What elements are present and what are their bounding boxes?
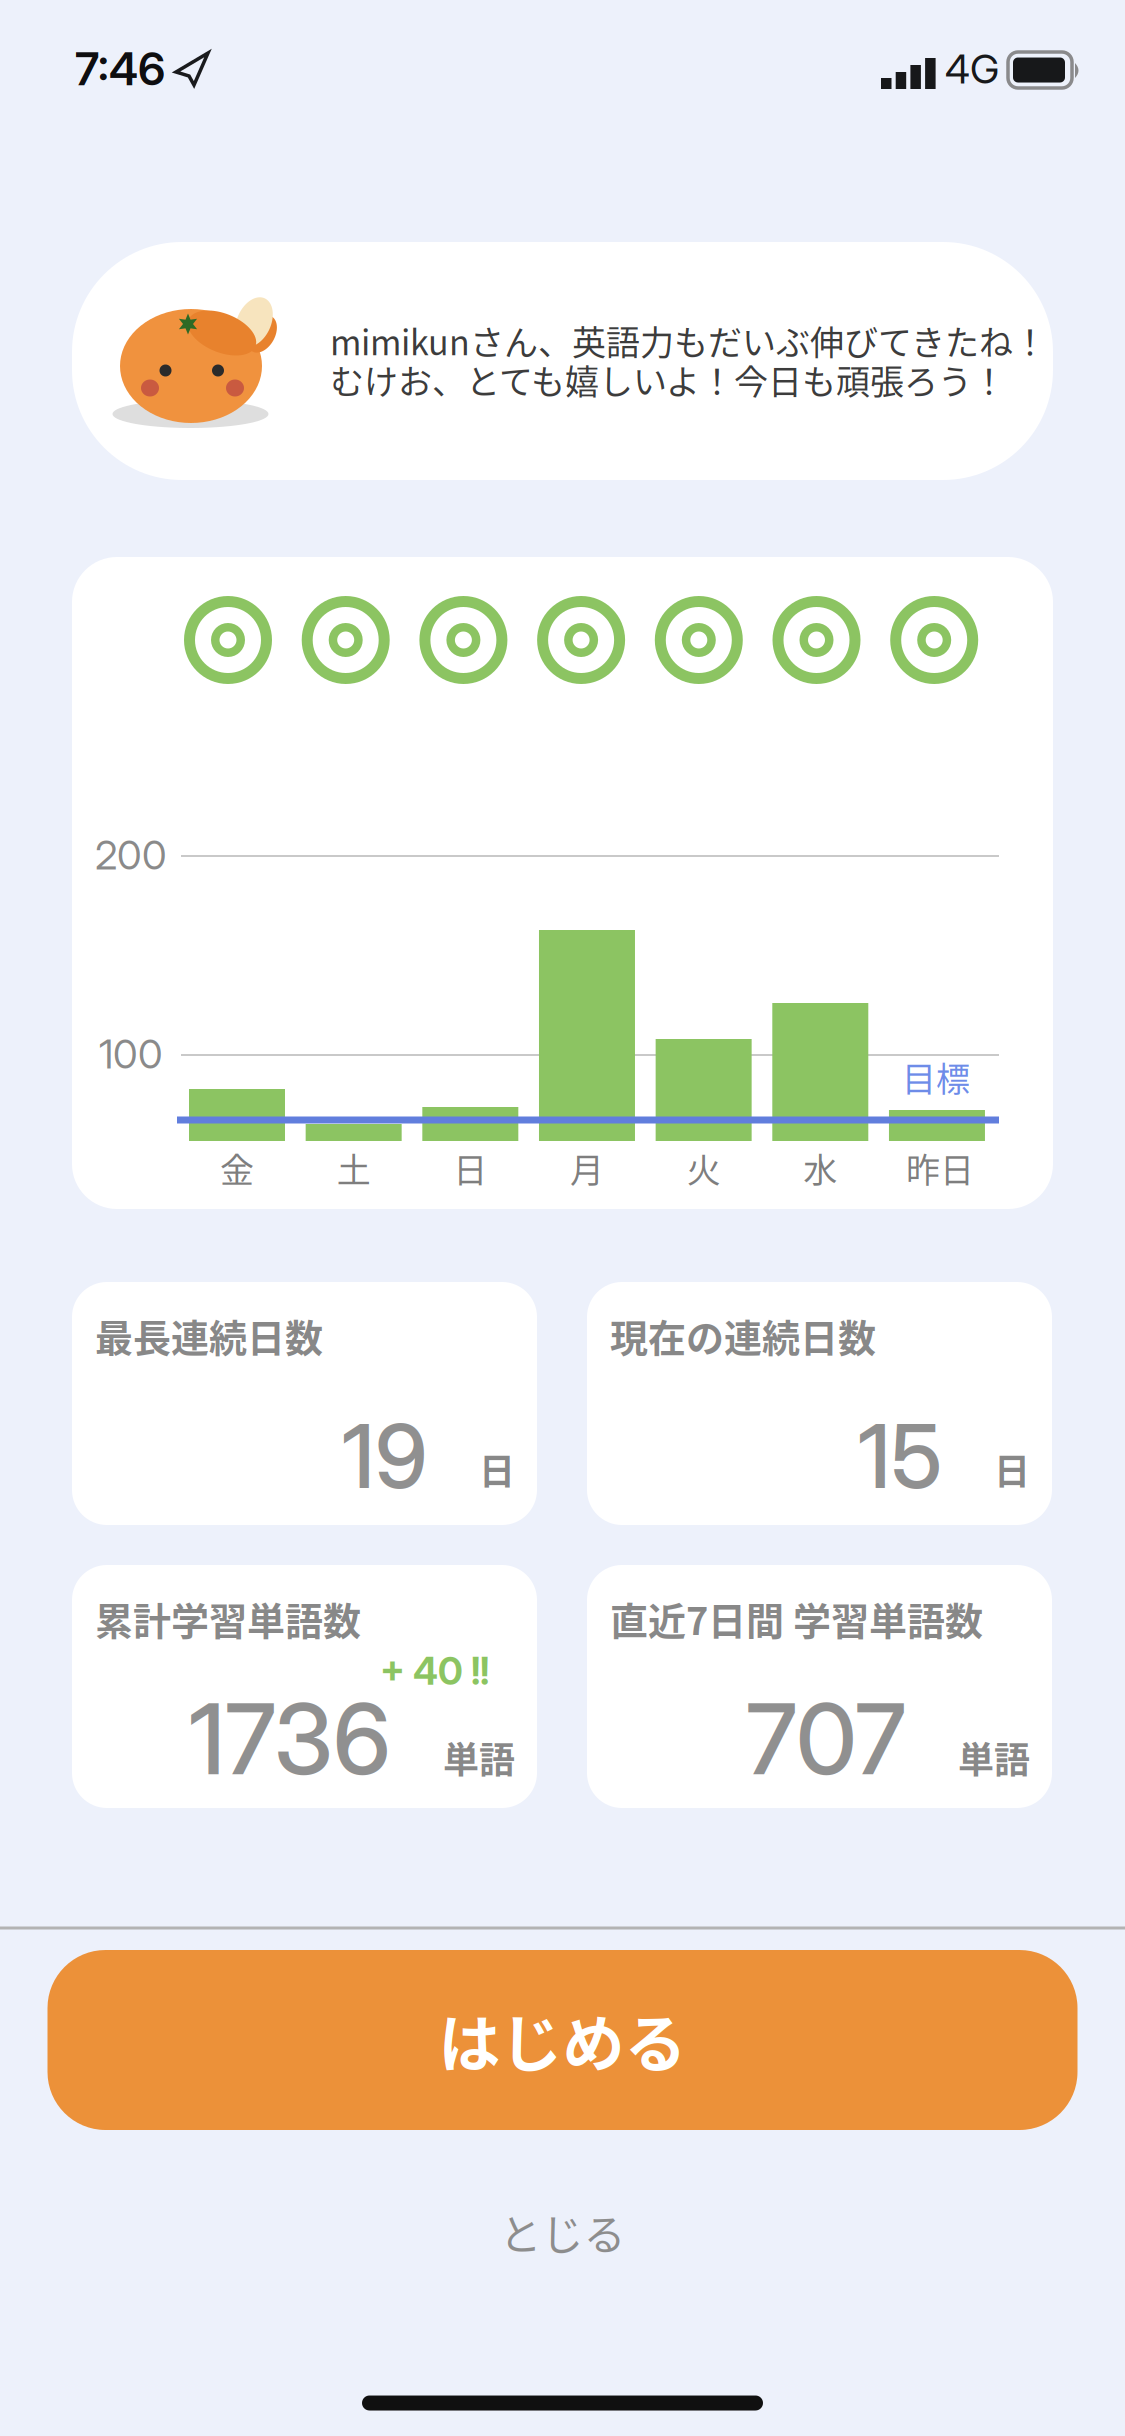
- staticText: 200: [95, 831, 167, 879]
- staticText: 707: [746, 1680, 906, 1798]
- staticText: はじめる: [438, 1995, 686, 2085]
- staticText: とじる: [499, 2202, 625, 2262]
- staticText: 日: [479, 1443, 515, 1495]
- staticText: 15: [858, 1403, 942, 1509]
- staticText: 現在の連続日数: [610, 1308, 876, 1363]
- staticText: + 40 !!: [380, 1648, 489, 1694]
- staticText: 土: [337, 1143, 371, 1193]
- staticText: 単語: [958, 1732, 1030, 1784]
- staticText: 4G: [945, 45, 999, 93]
- staticText: 1736: [189, 1680, 391, 1798]
- staticText: 日: [994, 1443, 1030, 1495]
- staticText: 目標: [902, 1052, 970, 1102]
- staticText: 月: [570, 1143, 604, 1193]
- staticText: mimikunさん、英語力もだいぶ伸びてきたね！ むけお、とても嬉しいよ！今日も…: [330, 321, 1047, 399]
- staticText: 直近7日間 学習単語数: [610, 1591, 983, 1646]
- staticText: 単語: [443, 1732, 515, 1784]
- staticText: 昨日: [906, 1143, 974, 1193]
- button[interactable]: はじめる: [47, 1950, 1077, 2130]
- staticText: 100: [99, 1030, 163, 1078]
- staticText: 日: [453, 1143, 487, 1193]
- staticText: 水: [803, 1143, 837, 1193]
- staticText: 火: [687, 1143, 721, 1193]
- staticText: 累計学習単語数: [95, 1591, 361, 1646]
- button[interactable]: とじる: [489, 2192, 635, 2272]
- staticText: 7:46: [75, 42, 165, 96]
- staticText: 金: [220, 1143, 254, 1193]
- staticText: 最長連続日数: [95, 1308, 323, 1363]
- staticText: 19: [342, 1403, 427, 1509]
